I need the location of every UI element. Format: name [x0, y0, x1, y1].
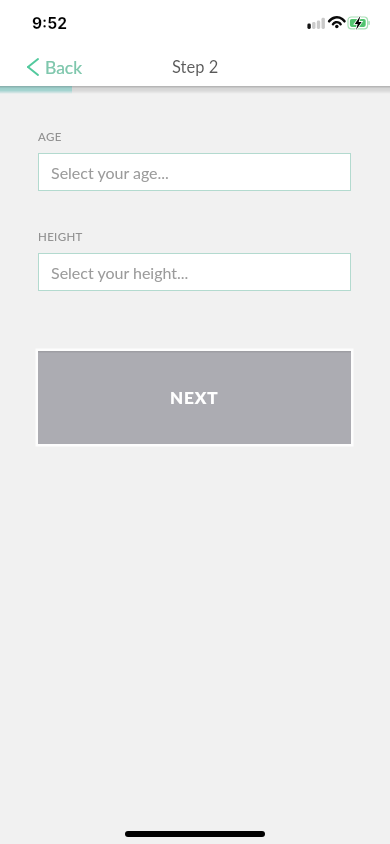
staticText: Step 2: [172, 57, 219, 77]
staticText: Select your height...: [51, 263, 189, 282]
button[interactable]: Back: [0, 47, 97, 87]
staticText: HEIGHT: [38, 230, 83, 244]
staticText: AGE: [38, 130, 62, 144]
staticText: Back: [45, 57, 83, 78]
staticText: 9:52: [32, 14, 67, 33]
staticText: Select your age...: [51, 163, 169, 182]
button[interactable]: NEXT: [38, 351, 351, 444]
staticText: NEXT: [170, 387, 219, 407]
button[interactable]: Select your height...: [38, 253, 351, 291]
button[interactable]: Select your age...: [38, 153, 351, 191]
